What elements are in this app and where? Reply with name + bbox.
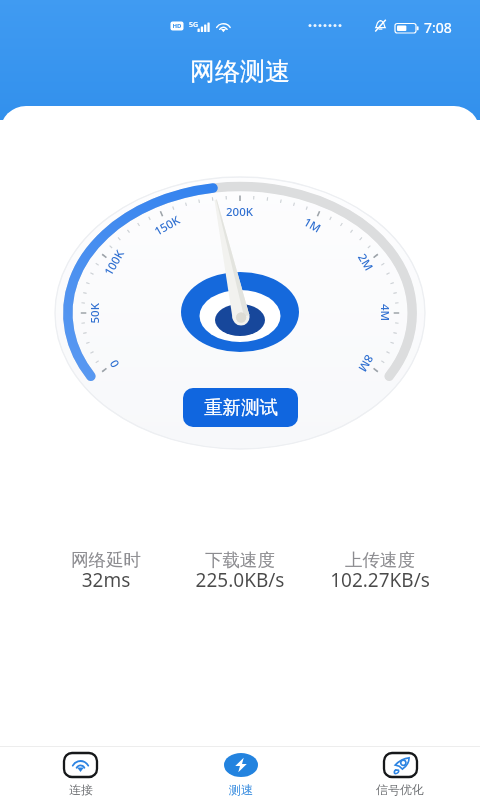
button[interactable]: 连接	[35, 746, 125, 800]
staticText: 测速	[229, 782, 253, 797]
staticText: 网络延时	[21, 549, 191, 571]
staticText: 102.27KB/s	[295, 567, 465, 593]
button[interactable]: 测速	[196, 746, 286, 800]
staticText: 重新测试	[204, 396, 278, 419]
button[interactable]: 重新测试	[183, 388, 298, 427]
button[interactable]: 信号优化	[355, 746, 445, 800]
staticText: 连接	[69, 782, 93, 797]
staticText: 上传速度	[295, 549, 465, 571]
staticText: 网络测速	[190, 56, 290, 87]
staticText: 225.0KB/s	[155, 567, 325, 593]
staticText: 信号优化	[376, 782, 424, 797]
staticText: 32ms	[21, 567, 191, 593]
staticText: 下载速度	[155, 549, 325, 571]
